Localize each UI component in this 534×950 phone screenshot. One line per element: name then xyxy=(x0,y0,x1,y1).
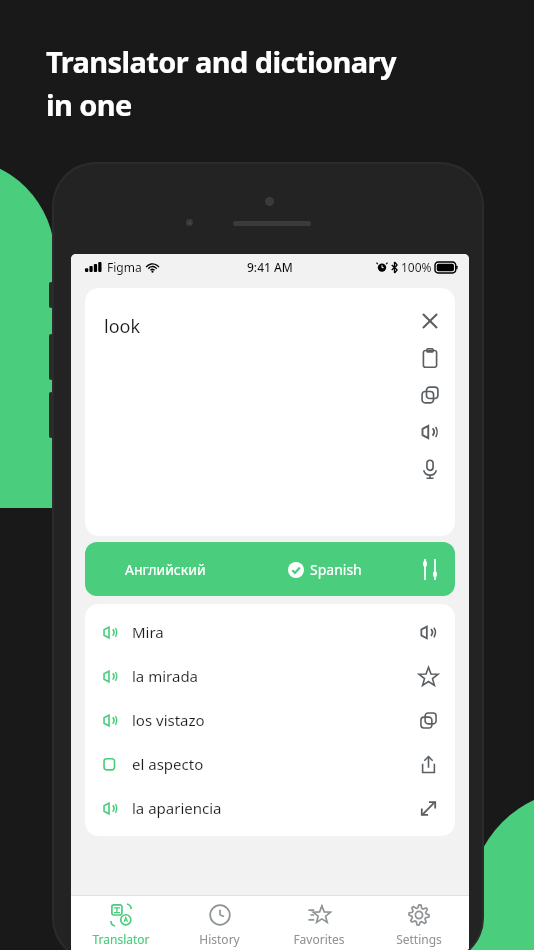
staticText: Figma xyxy=(107,259,142,275)
staticText: la apariencia xyxy=(132,798,418,818)
button[interactable]: el aspecto xyxy=(85,742,455,786)
staticText: Translator xyxy=(92,931,150,947)
staticText: Mira xyxy=(132,622,418,642)
staticText: Favorites xyxy=(293,931,345,947)
button[interactable]: Clear xyxy=(419,310,441,332)
other: Action xyxy=(418,798,439,819)
button[interactable]: la apariencia xyxy=(85,786,455,830)
staticText: el aspecto xyxy=(132,754,418,774)
other: Action xyxy=(418,622,439,643)
staticText: in one xyxy=(46,85,132,124)
staticText: 100% xyxy=(401,259,432,275)
staticText: look xyxy=(104,314,141,339)
other: Action xyxy=(418,710,439,731)
other: Action xyxy=(418,754,439,775)
button[interactable]: Английский xyxy=(85,542,455,596)
staticText: 9:41 AM xyxy=(247,259,293,275)
button[interactable]: Voice input xyxy=(419,458,441,480)
button[interactable]: Listen xyxy=(419,421,441,443)
button[interactable]: la mirada xyxy=(85,654,455,698)
button[interactable]: Swap languages xyxy=(405,542,455,596)
button[interactable]: Translator xyxy=(71,896,170,950)
button[interactable]: Paste xyxy=(419,347,441,369)
button[interactable]: Favorites xyxy=(269,896,369,950)
staticText: History xyxy=(199,931,240,947)
button[interactable]: History xyxy=(170,896,269,950)
button[interactable]: Copy xyxy=(419,384,441,406)
other: Action xyxy=(418,666,439,687)
button[interactable]: Settings xyxy=(369,896,469,950)
staticText: la mirada xyxy=(132,666,418,686)
staticText: Английский xyxy=(125,560,206,579)
staticText: Translator and dictionary xyxy=(46,42,396,81)
button[interactable]: Mira xyxy=(85,610,455,654)
button[interactable]: los vistazo xyxy=(85,698,455,742)
staticText: los vistazo xyxy=(132,710,418,730)
staticText: Spanish xyxy=(310,560,362,579)
staticText: Settings xyxy=(396,931,442,947)
